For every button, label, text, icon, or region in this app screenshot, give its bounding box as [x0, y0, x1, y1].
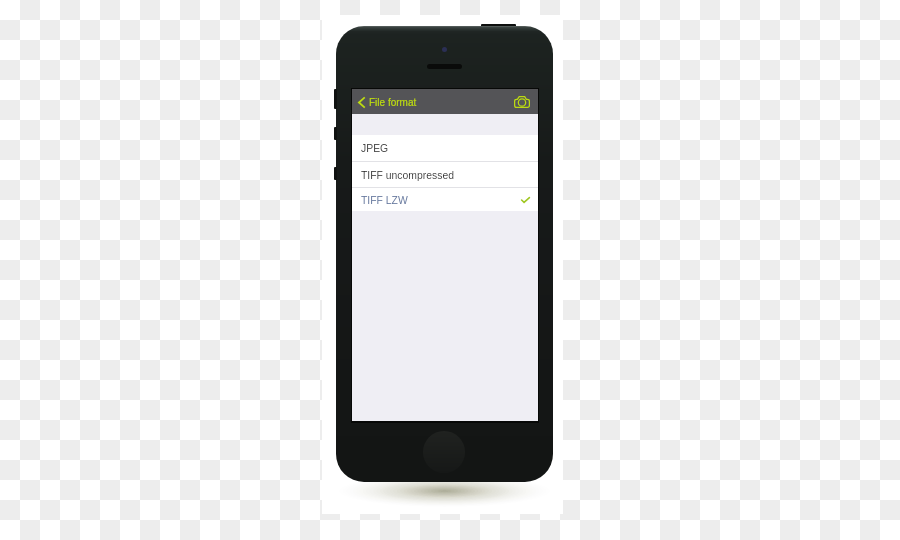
- staticText: File format: [369, 97, 417, 108]
- button[interactable]: File format: [352, 96, 421, 107]
- staticText: JPEG: [361, 143, 389, 155]
- staticText: TIFF uncompressed: [361, 170, 454, 182]
- button[interactable]: TIFF LZW: [352, 188, 538, 211]
- button[interactable]: JPEG: [352, 135, 538, 161]
- staticText: TIFF LZW: [361, 195, 408, 207]
- button[interactable]: Camera: [509, 89, 534, 114]
- button[interactable]: TIFF uncompressed: [352, 162, 538, 187]
